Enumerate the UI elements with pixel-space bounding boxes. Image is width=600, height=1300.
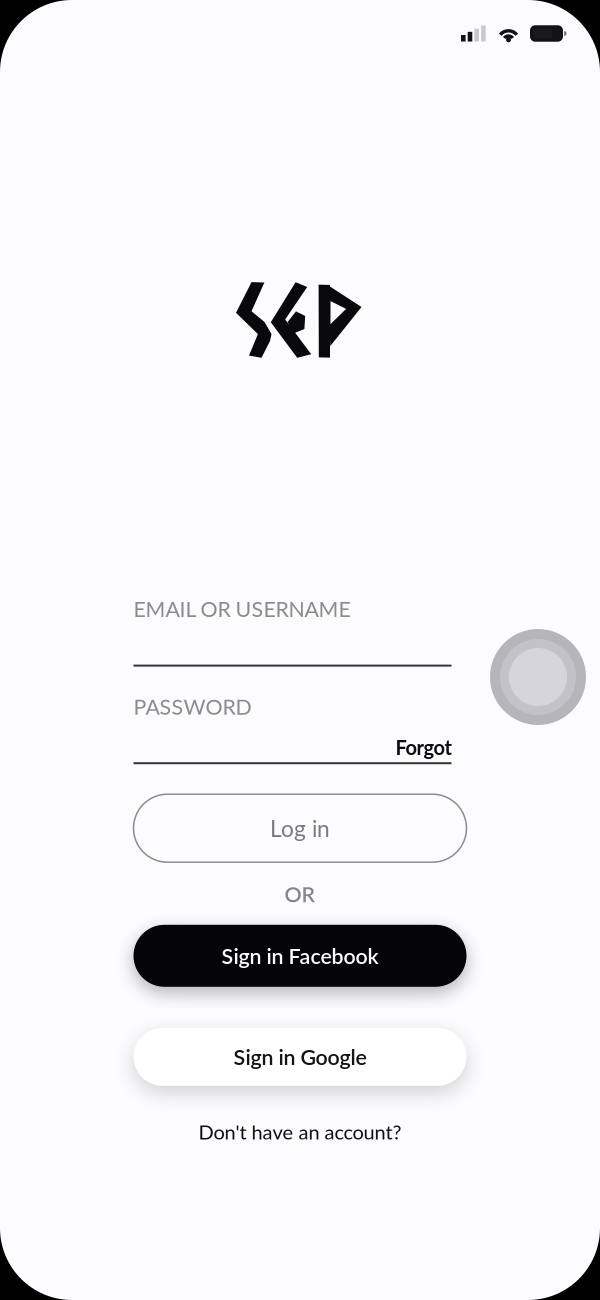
button[interactable]: Don't have an account? xyxy=(198,1120,401,1144)
staticText: Sign in Google xyxy=(233,1044,366,1070)
button[interactable]: Sign in Google xyxy=(133,1028,466,1086)
staticText: Log in xyxy=(270,815,330,842)
staticText: PASSWORD xyxy=(133,694,251,719)
staticText: Don't have an account? xyxy=(198,1120,401,1144)
button[interactable]: Log in xyxy=(133,794,466,862)
button[interactable]: Forgot xyxy=(395,735,451,759)
button[interactable]: Sign in Facebook xyxy=(133,925,466,987)
staticText: EMAIL OR USERNAME xyxy=(133,596,350,622)
staticText: Sign in Facebook xyxy=(221,943,378,969)
staticText: OR xyxy=(284,881,315,907)
staticText: Forgot xyxy=(395,735,451,759)
